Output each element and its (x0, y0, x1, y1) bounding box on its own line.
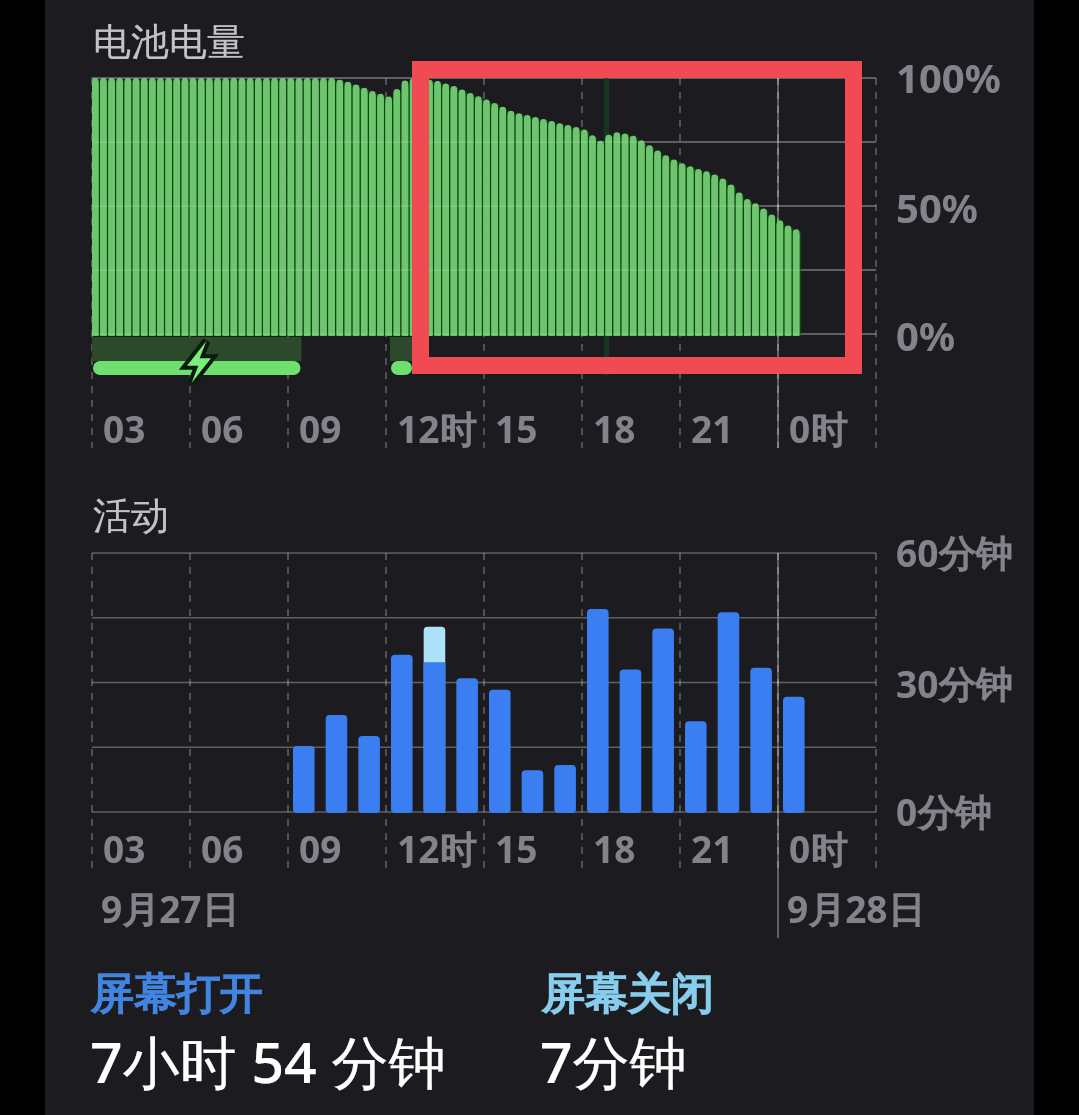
button[interactable]: 屏幕打开 7小时 54 分钟 (80, 955, 520, 1100)
button[interactable]: 电池电量图表 (0, 0, 1079, 1115)
button[interactable]: 电池电量图表 (45, 0, 1034, 470)
button[interactable]: 活动图表 (45, 470, 1034, 950)
button[interactable]: 屏幕关闭 7分钟 (530, 955, 970, 1100)
